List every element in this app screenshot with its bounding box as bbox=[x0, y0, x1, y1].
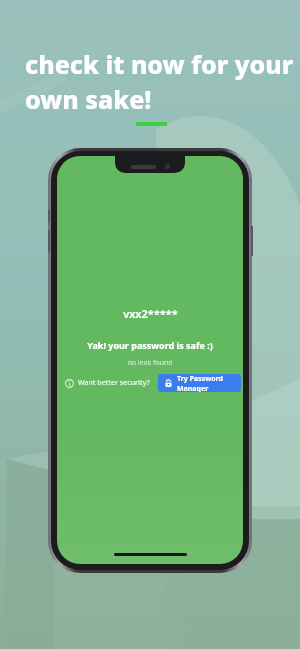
button[interactable]: Want better security? bbox=[63, 375, 152, 391]
staticText: check it now for your bbox=[25, 47, 294, 81]
staticText: Try Password Manager bbox=[177, 374, 235, 392]
staticText: no leak found bbox=[127, 358, 173, 368]
button[interactable]: Try Password Manager bbox=[158, 374, 241, 392]
staticText: own sake! bbox=[25, 82, 152, 116]
staticText: Yak! your password is safe :) bbox=[87, 339, 213, 351]
staticText: vxx2***** bbox=[123, 306, 178, 321]
staticText: Want better security? bbox=[78, 378, 150, 388]
